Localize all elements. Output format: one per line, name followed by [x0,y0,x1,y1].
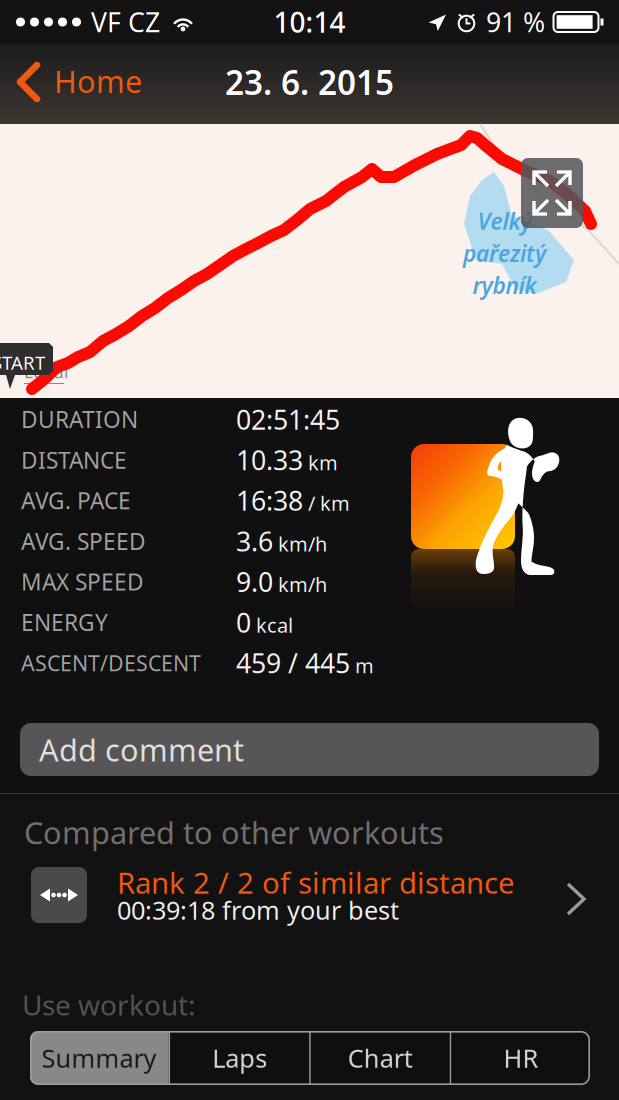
staticText: Home [54,61,142,101]
staticText: DURATION [21,404,138,434]
staticText: 02:51:45 [236,402,340,437]
staticText: Chart [348,1041,413,1075]
staticText: Legal [24,360,68,383]
staticText: AVG. SPEED [21,526,146,556]
staticText: 10.33 [236,442,303,478]
staticText: 23. 6. 2015 [225,60,394,104]
button[interactable]: Add comment [20,723,599,776]
staticText: km/h [278,571,327,598]
button[interactable]: HR [451,1031,590,1085]
staticText: Rank 2 / 2 of similar distance [117,863,515,902]
staticText: Compared to other workouts [24,812,444,853]
button[interactable]: Chart [311,1031,450,1085]
staticText: START [0,350,45,375]
staticText: Laps [212,1041,267,1075]
staticText: ASCENT/DESCENT [21,649,201,677]
staticText: HR [503,1041,538,1075]
staticText: rybník [472,270,536,300]
staticText: 10:14 [273,3,345,41]
staticText: VF CZ [91,4,160,40]
staticText: kcal [256,612,293,638]
staticText: Add comment [39,729,244,770]
staticText: 00:39:18 from your best [117,893,399,927]
staticText: 91 % [486,4,545,40]
staticText: AVG. PACE [21,485,131,515]
staticText: 9.0 [236,564,273,599]
staticText: Summary [42,1041,157,1075]
staticText: 459 / 445 [236,645,350,681]
staticText: 0 [236,605,251,640]
staticText: 16:38 [236,483,303,518]
staticText: Velký [477,206,531,236]
button[interactable]: Laps [170,1031,309,1085]
staticText: DISTANCE [21,445,127,475]
button[interactable]: Summary [30,1031,169,1085]
staticText: pařezitý [463,238,546,268]
button[interactable]: Expand map [521,158,583,228]
staticText: km [308,449,338,476]
staticText: 3.6 [236,523,273,559]
staticText: Use workout: [22,986,196,1023]
staticText: MAX SPEED [21,567,144,597]
staticText: / km [308,490,350,516]
button[interactable]: Home [0,46,156,122]
staticText: m [355,652,374,679]
button[interactable]: Rank 2 / 2 of similar distance [0,857,619,935]
staticText: km/h [278,530,327,557]
staticText: ENERGY [21,607,108,637]
